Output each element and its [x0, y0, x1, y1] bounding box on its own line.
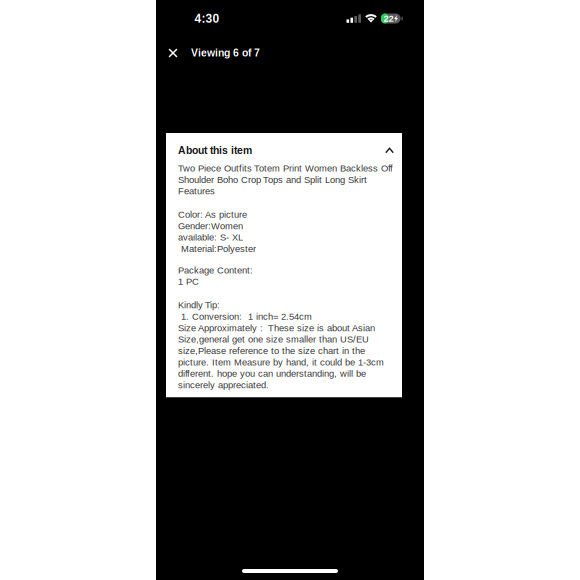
button[interactable]: Close: [160, 41, 186, 65]
staticText: 22: [383, 13, 393, 24]
staticText: Two Piece Outfits Totem Print Women Back…: [178, 163, 393, 196]
staticText: Color: As picture Gender:Women available…: [178, 209, 256, 254]
button[interactable]: About this item: [178, 144, 394, 157]
staticText: Kindly Tip: 1. Conversion: 1 inch= 2.54c…: [178, 300, 384, 390]
staticText: 4:30: [194, 12, 219, 25]
staticText: About this item: [178, 145, 252, 156]
staticText: Package Content: 1 PC: [178, 265, 253, 287]
staticText: Viewing 6 of 7: [191, 47, 260, 59]
